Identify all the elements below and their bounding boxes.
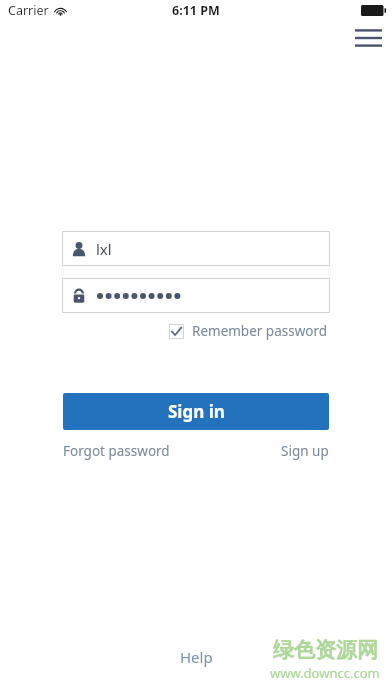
button[interactable]: User name [62, 231, 330, 266]
other: Password [71, 288, 87, 304]
button[interactable]: Password [62, 278, 330, 313]
staticText: 绿色资源网 [273, 637, 378, 663]
staticText: Help [180, 647, 213, 667]
button[interactable]: Help [166, 643, 227, 671]
staticText: 6:11 PM [172, 2, 220, 19]
button[interactable]: Sign in [63, 393, 329, 430]
staticText: Forgot password [63, 442, 170, 460]
other: User name [71, 241, 87, 257]
staticText: Sign up [281, 442, 329, 460]
button[interactable]: Sign up [281, 438, 329, 464]
button[interactable]: Menu [348, 22, 388, 54]
staticText: Carrier [8, 2, 49, 19]
staticText: www.downcc.com [270, 664, 380, 682]
staticText: Sign in [168, 400, 225, 423]
staticText: Remember password [192, 322, 328, 340]
button[interactable]: Forgot password [63, 438, 170, 464]
staticText: lxl [96, 239, 112, 259]
button[interactable]: Remember password [169, 319, 328, 343]
